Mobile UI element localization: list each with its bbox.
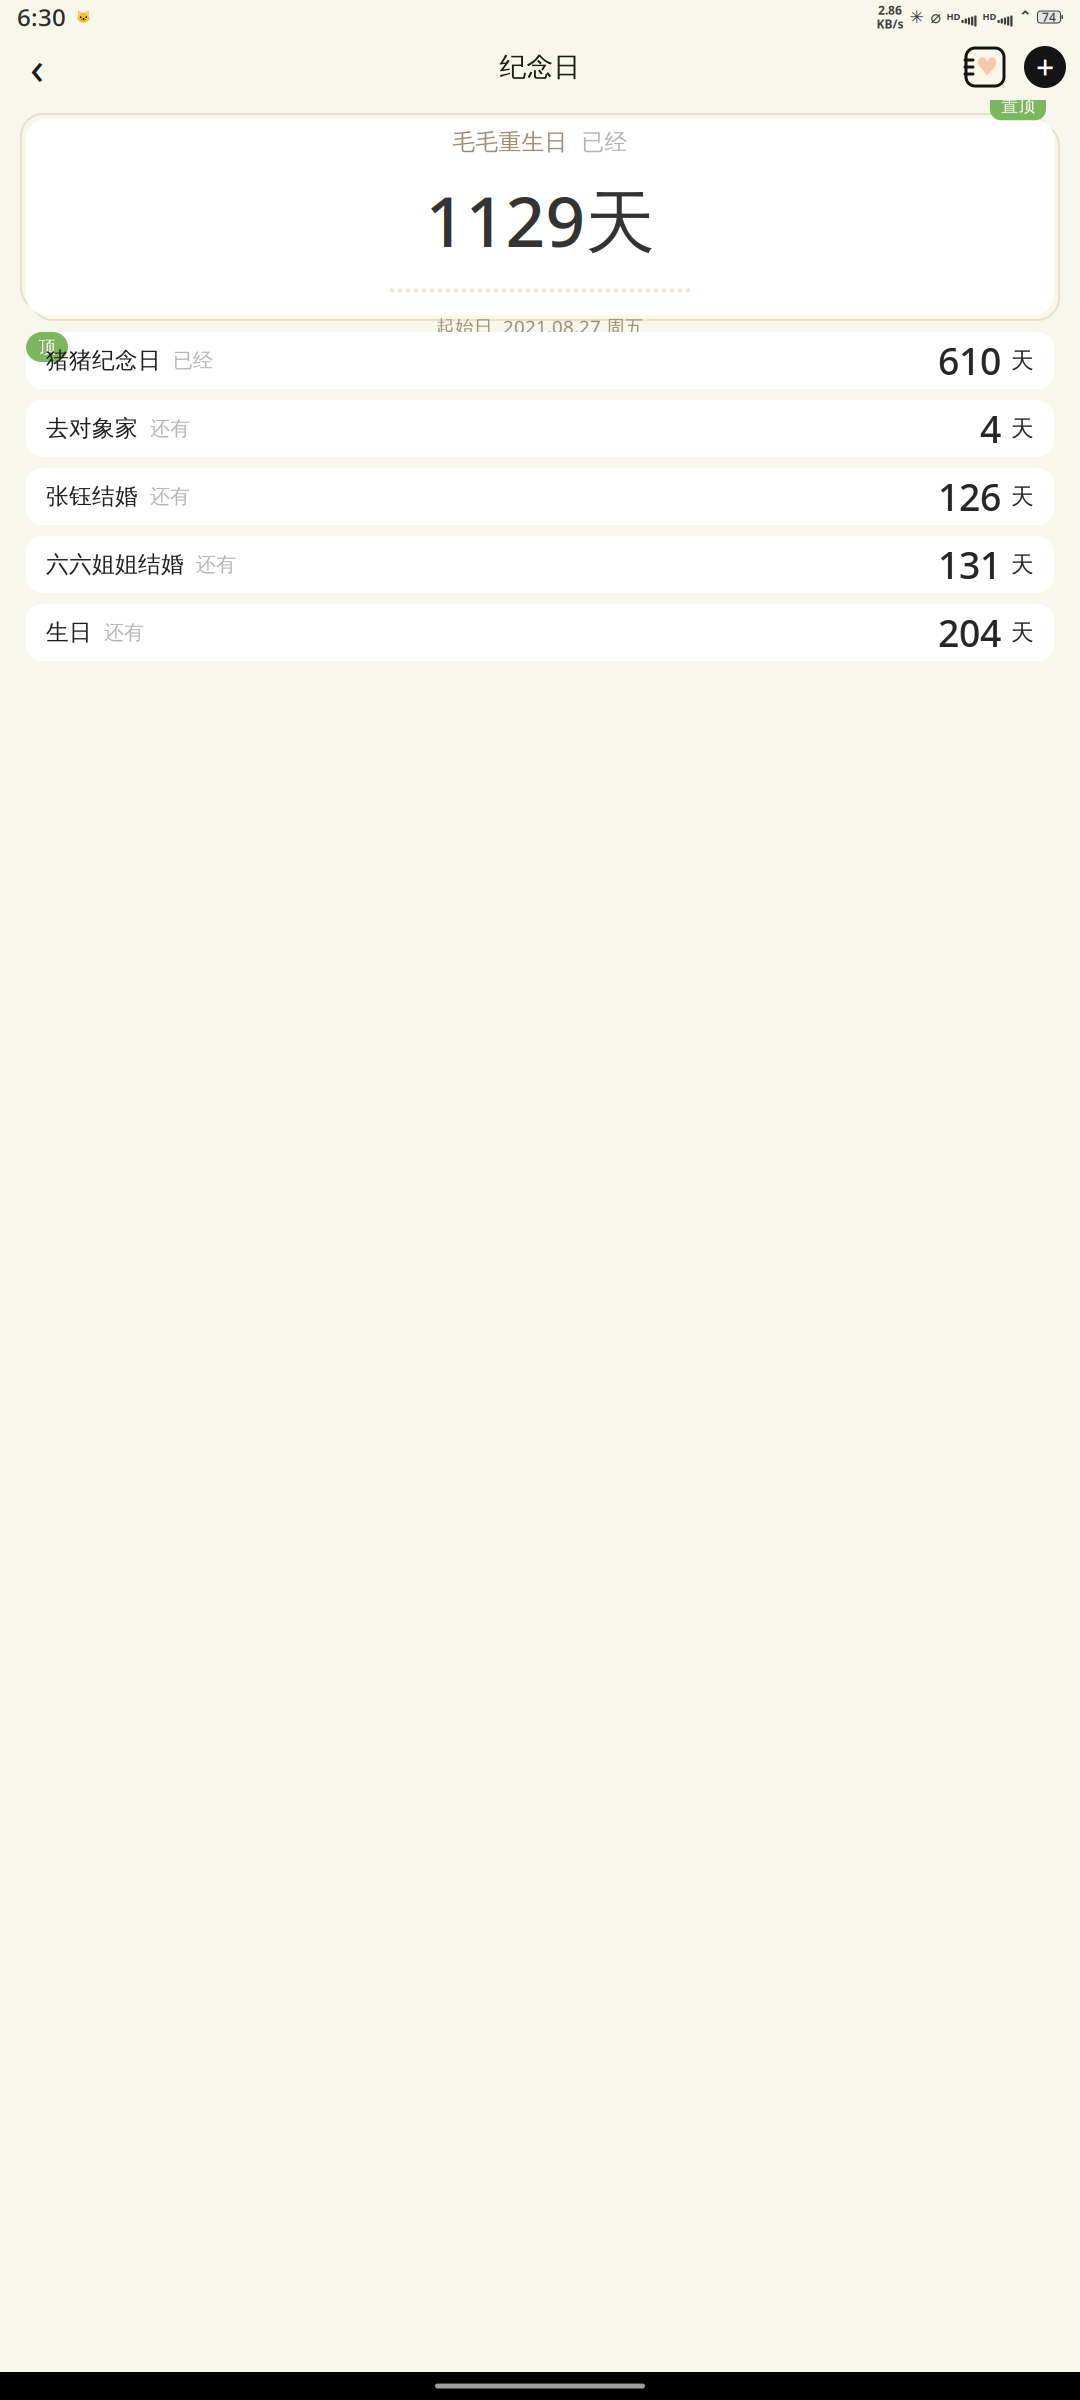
- staticText: ⌀: [930, 7, 940, 27]
- button[interactable]: 置顶: [26, 114, 1054, 320]
- staticText: 4: [980, 404, 1001, 453]
- staticText: 六六姐姐结婚: [46, 551, 184, 578]
- staticText: 1129天: [425, 174, 654, 266]
- staticText: 还有: [150, 484, 190, 509]
- staticText: ♥: [976, 53, 999, 81]
- button[interactable]: Memories: [962, 46, 1008, 88]
- staticText: ⌃: [1018, 8, 1031, 26]
- staticText: 2.86: [878, 2, 902, 18]
- button[interactable]: 生日: [26, 604, 1054, 661]
- button[interactable]: 去对象家: [26, 400, 1054, 457]
- button[interactable]: Add: [1024, 46, 1066, 88]
- staticText: 顶: [38, 336, 55, 358]
- staticText: 天: [1011, 483, 1034, 510]
- staticText: 131: [938, 540, 1001, 589]
- staticText: 纪念日: [499, 51, 580, 83]
- staticText: 204: [938, 608, 1001, 657]
- staticText: 已经: [173, 348, 213, 373]
- staticText: 天: [1011, 347, 1034, 374]
- staticText: 还有: [150, 416, 190, 441]
- staticText: 🐱: [76, 10, 91, 24]
- button[interactable]: 顶: [26, 332, 1054, 389]
- staticText: +: [1036, 46, 1054, 88]
- button[interactable]: 六六姐姐结婚: [26, 536, 1054, 593]
- staticText: 张钰结婚: [46, 483, 138, 510]
- staticText: 天: [1011, 619, 1034, 646]
- staticText: 猪猪纪念日: [46, 347, 161, 374]
- staticText: 毛毛重生日: [452, 128, 567, 156]
- button[interactable]: Back: [14, 44, 60, 90]
- staticText: 天: [1011, 551, 1034, 578]
- staticText: 还有: [196, 552, 236, 577]
- staticText: ‹: [30, 37, 44, 97]
- button[interactable]: 张钰结婚: [26, 468, 1054, 525]
- staticText: 74: [1042, 9, 1056, 25]
- staticText: 126: [938, 472, 1001, 521]
- staticText: 生日: [46, 619, 92, 646]
- staticText: 去对象家: [46, 415, 138, 442]
- staticText: HD: [982, 10, 996, 23]
- staticText: 起始日 2021.08.27 周五: [436, 314, 644, 339]
- staticText: ✳: [909, 7, 924, 27]
- staticText: 6:30: [17, 1, 66, 33]
- staticText: 610: [938, 336, 1001, 385]
- staticText: HD: [946, 10, 960, 23]
- staticText: 天: [1011, 415, 1034, 442]
- staticText: 置顶: [1001, 95, 1035, 116]
- staticText: 还有: [104, 620, 144, 645]
- staticText: KB/s: [876, 16, 903, 32]
- staticText: 已经: [581, 128, 627, 156]
